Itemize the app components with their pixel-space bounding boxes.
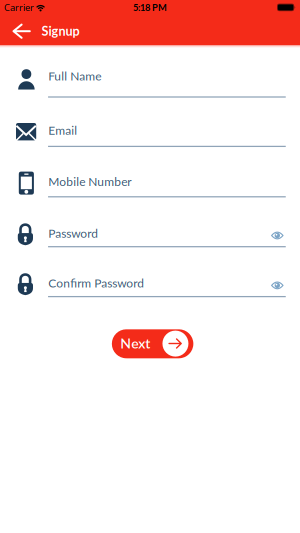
staticText: Password (48, 226, 98, 240)
staticText: Confirm Password (48, 276, 144, 290)
staticText: Email (48, 123, 77, 137)
staticText: Mobile Number (48, 174, 131, 189)
button[interactable]: Email (0, 97, 300, 147)
staticText: Next (120, 335, 150, 351)
staticText: Signup (42, 23, 80, 38)
button[interactable]: Show Password (267, 227, 287, 243)
staticText: 5:18 PM (133, 2, 167, 13)
staticText: Carrier (4, 1, 34, 14)
button[interactable]: Confirm Password (0, 247, 300, 297)
button[interactable]: Full Name (0, 47, 300, 97)
button[interactable]: Password (0, 197, 300, 247)
button[interactable]: Mobile Number (0, 147, 300, 197)
staticText: Full Name (48, 69, 101, 83)
button[interactable]: Show Confirm Password (267, 277, 287, 293)
button[interactable]: Next (112, 329, 193, 358)
button[interactable]: Back (8, 20, 34, 42)
